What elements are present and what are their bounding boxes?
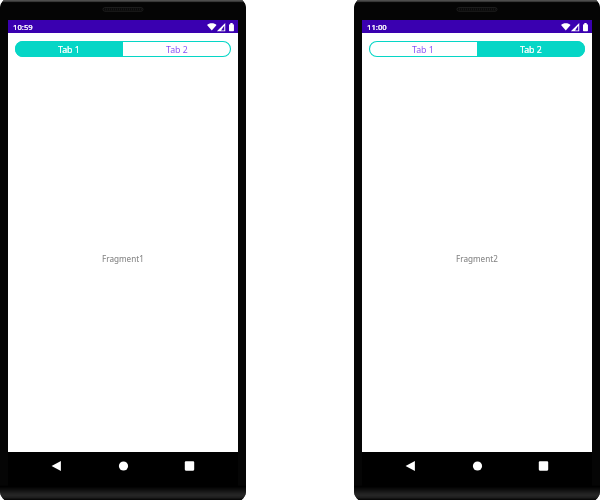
button[interactable]: Recent apps — [177, 461, 202, 486]
staticText: 11:00 — [367, 22, 387, 32]
button[interactable]: Tab 1 — [15, 41, 123, 57]
button[interactable]: Back — [44, 461, 69, 486]
button[interactable]: Tab 2 — [123, 41, 231, 57]
button[interactable]: Tab 2 — [477, 41, 585, 57]
button[interactable]: Recent apps — [531, 461, 556, 486]
button[interactable]: Back — [398, 461, 423, 486]
button[interactable]: Home — [111, 461, 136, 486]
staticText: Tab 2 — [166, 44, 188, 56]
staticText: Tab 1 — [412, 44, 434, 56]
staticText: Fragment2 — [456, 253, 498, 264]
staticText: Fragment1 — [102, 253, 144, 264]
staticText: 10:59 — [13, 22, 33, 32]
staticText: Tab 2 — [520, 44, 542, 56]
button[interactable]: Tab 1 — [369, 41, 477, 57]
button[interactable]: Home — [465, 461, 490, 486]
staticText: Tab 1 — [58, 44, 80, 56]
